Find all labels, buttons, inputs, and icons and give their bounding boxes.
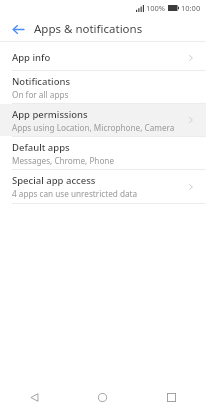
staticText: Default apps bbox=[12, 141, 70, 154]
staticText: 4 apps can use unrestricted data bbox=[12, 188, 138, 199]
staticText: Apps & notifications bbox=[34, 21, 143, 37]
button[interactable]: Back bbox=[8, 19, 28, 39]
staticText: App info bbox=[12, 51, 51, 64]
staticText: Messages, Chrome, Phone bbox=[12, 155, 115, 166]
button[interactable]: Home bbox=[68, 382, 137, 412]
button[interactable]: App permissions bbox=[0, 104, 206, 136]
button[interactable]: Back bbox=[0, 382, 68, 412]
staticText: On for all apps bbox=[12, 89, 69, 100]
staticText: 10:00 bbox=[181, 3, 201, 13]
button[interactable]: Notifications bbox=[0, 71, 206, 103]
button[interactable]: Default apps bbox=[0, 137, 206, 169]
button[interactable]: App info bbox=[0, 45, 206, 70]
staticText: Notifications bbox=[12, 75, 71, 88]
staticText: App permissions bbox=[12, 108, 88, 121]
staticText: Apps using Location, Microphone, Camera bbox=[12, 122, 175, 133]
button[interactable]: Recent apps bbox=[137, 382, 206, 412]
button[interactable]: Special app access bbox=[0, 170, 206, 203]
staticText: Special app access bbox=[12, 174, 96, 187]
staticText: 100% bbox=[146, 3, 166, 13]
